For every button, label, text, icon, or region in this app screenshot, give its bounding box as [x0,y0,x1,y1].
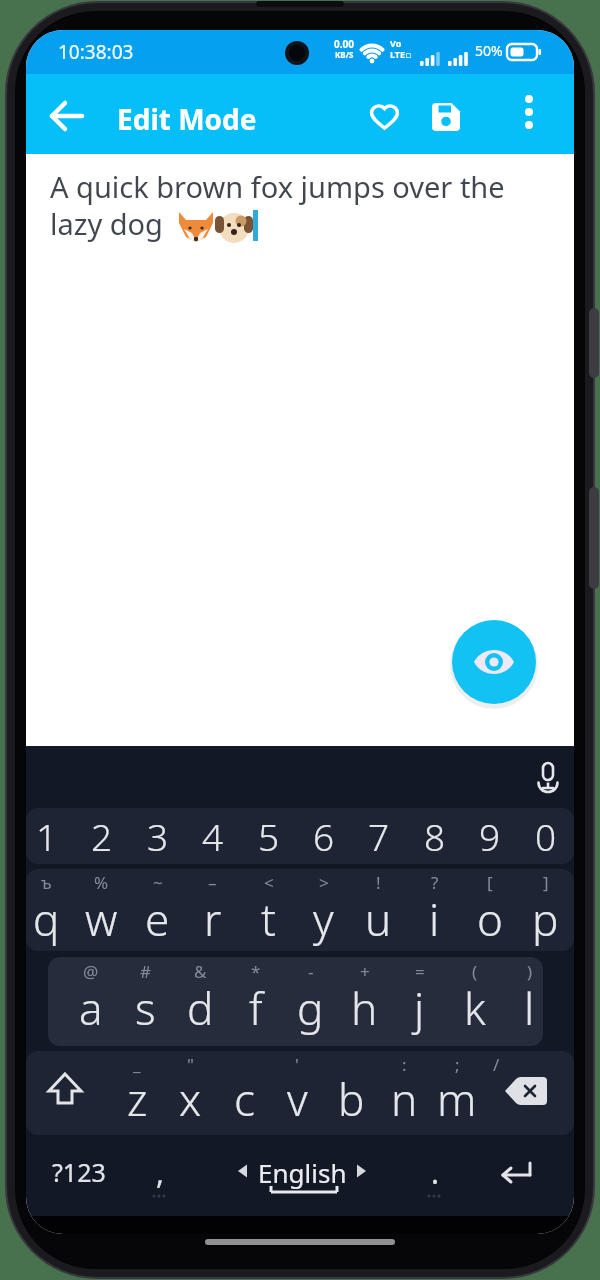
staticText: 50% [475,41,503,60]
staticText: Vo [390,37,402,49]
staticText: 1 [36,811,58,861]
button[interactable]: % [74,869,129,953]
staticText: ] [543,871,549,894]
button[interactable]: 0 [518,808,573,864]
staticText: 0 [535,811,557,861]
button[interactable]: = [392,958,447,1042]
button[interactable]: 9 [462,808,517,864]
button[interactable]: ! [351,869,406,953]
staticText: KB/S [335,49,354,60]
staticText: n [391,1069,418,1129]
button[interactable]: > [296,869,351,953]
button[interactable] [498,1064,554,1118]
staticText: ?123 [52,1155,106,1189]
button[interactable]: b [324,1051,378,1133]
button[interactable]: ъ [26,869,74,953]
button[interactable]: @ [63,958,118,1042]
button[interactable]: 8 [407,808,462,864]
button[interactable]: – [185,869,240,953]
staticText: 0.00 [334,37,354,51]
staticText: x [179,1069,202,1129]
staticText: i [429,889,440,949]
staticText: f [249,978,263,1038]
button[interactable]: c [217,1051,271,1133]
staticText: 3 [147,811,169,861]
button[interactable] [36,1060,94,1118]
staticText: r [204,889,222,949]
staticText: 6 [313,811,335,861]
staticText: v [287,1069,308,1129]
button[interactable]: 3 [130,808,185,864]
staticText: 4 [202,811,224,861]
staticText: ъ [41,871,52,894]
staticText: , [156,1152,165,1193]
button[interactable]: ) [502,958,557,1042]
staticText: y [313,889,334,949]
staticText: h [351,978,378,1038]
staticText: ' [295,1053,299,1076]
staticText: A quick brown fox jumps over the [50,167,505,206]
staticText: ! [376,871,381,894]
staticText: 9 [479,811,501,861]
staticText: : [402,1053,407,1076]
staticText: 10:38:03 [58,39,134,65]
button[interactable] [487,1144,547,1200]
button[interactable]: # [118,958,173,1042]
staticText: j [414,978,425,1038]
staticText: > [319,871,329,894]
staticText: z [127,1069,148,1129]
button[interactable]: ~ [130,869,185,953]
staticText: a [79,978,103,1038]
button[interactable]: ' [270,1051,324,1133]
staticText: < [264,871,274,894]
staticText: b [338,1069,365,1129]
button[interactable]: English [216,1144,388,1200]
button[interactable]: _ [110,1051,164,1133]
button[interactable]: . [413,1144,457,1200]
button[interactable]: 1 [26,808,74,864]
staticText: c [234,1069,255,1129]
button[interactable]: 6 [296,808,351,864]
button[interactable]: [ [462,869,517,953]
button[interactable]: " [163,1051,217,1133]
button[interactable]: < [241,869,296,953]
staticText: d [187,978,214,1038]
staticText: l [524,978,535,1038]
button[interactable]: ] [518,869,573,953]
staticText: 2 [91,811,113,861]
button[interactable]: ; [430,1051,484,1133]
button[interactable]: 5 [241,808,296,864]
staticText: + [360,960,370,983]
staticText: u [365,889,392,949]
staticText: e [145,889,170,949]
staticText: * [251,960,261,983]
button[interactable]: 4 [185,808,240,864]
staticText: = [415,960,425,983]
staticText: [ [487,871,493,894]
staticText: o [477,889,503,949]
button[interactable]: 7 [351,808,406,864]
button[interactable]: ( [447,958,502,1042]
button[interactable] [357,90,411,144]
button[interactable]: ?123 [39,1144,119,1200]
button[interactable]: - [283,958,338,1042]
staticText: w [85,889,118,949]
button[interactable]: : [377,1051,431,1133]
button[interactable]: ? [407,869,462,953]
button[interactable]: + [337,958,392,1042]
staticText: ? [431,871,439,894]
staticText: ( [472,960,478,983]
button[interactable] [507,90,551,134]
button[interactable]: 2 [74,808,129,864]
staticText: " [187,1053,194,1076]
button[interactable]: * [228,958,283,1042]
button[interactable] [419,90,473,144]
button[interactable] [524,753,572,801]
button[interactable]: , [138,1144,182,1200]
staticText: LTE▫ [390,48,412,60]
staticText: ~ [153,871,163,894]
button[interactable] [452,620,536,704]
button[interactable] [40,88,94,142]
staticText: lazy dog [50,204,163,243]
button[interactable]: & [173,958,228,1042]
